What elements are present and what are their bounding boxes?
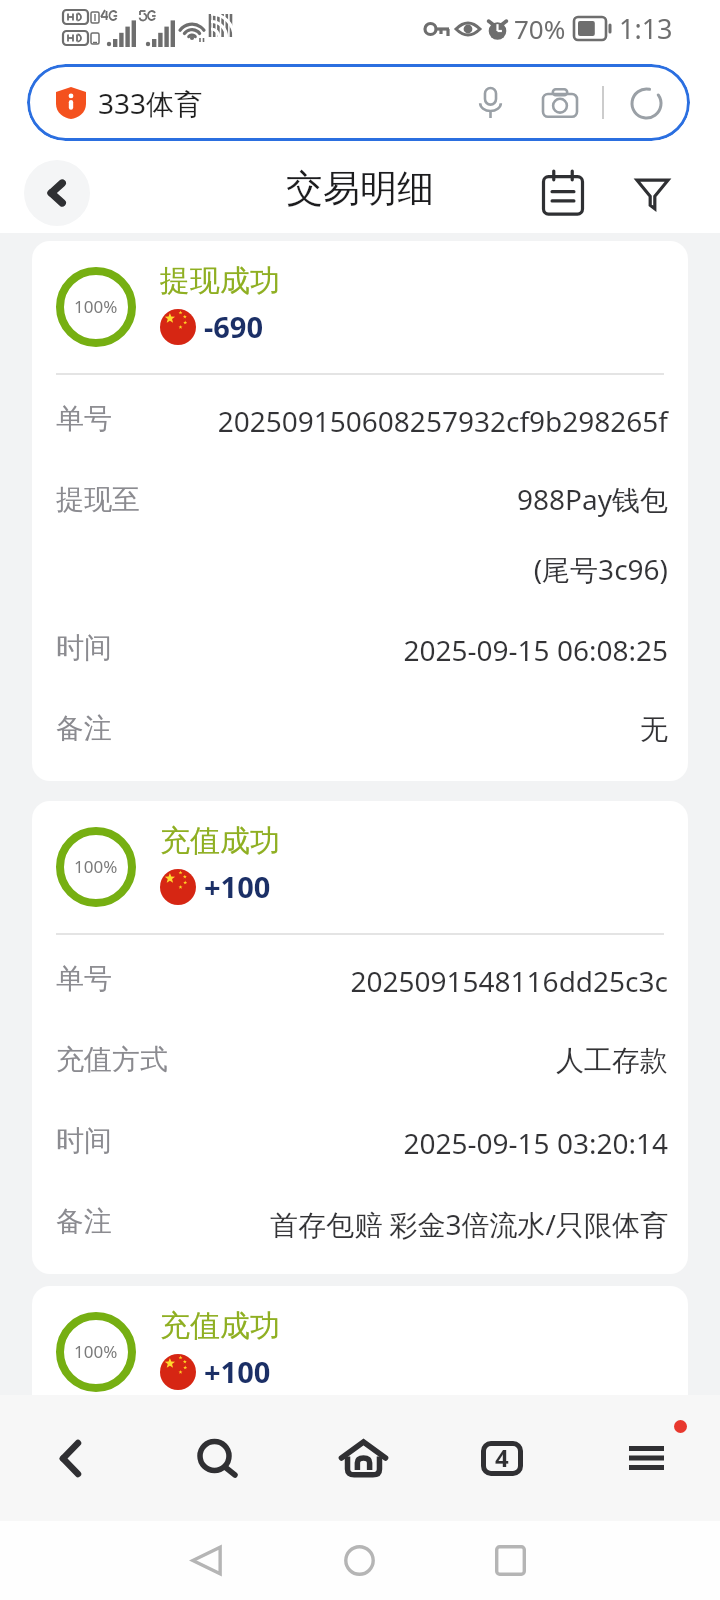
staticText: +100 bbox=[204, 1352, 271, 1391]
staticText: 单号 bbox=[56, 401, 112, 436]
button[interactable]: Filter bbox=[617, 158, 687, 228]
staticText: 充值成功 bbox=[160, 822, 280, 860]
staticText: 202509150608257932cf9b298265f bbox=[166, 402, 668, 440]
staticText: 100% bbox=[74, 855, 118, 878]
staticText: 2025-09-15 03:20:14 bbox=[166, 1124, 668, 1162]
staticText: 备注 bbox=[56, 711, 112, 746]
staticText: 100% bbox=[74, 295, 118, 318]
button[interactable]: Home bbox=[323, 1418, 403, 1498]
staticText: -690 bbox=[204, 307, 264, 346]
staticText: 4 bbox=[495, 1441, 509, 1474]
button[interactable]: Back bbox=[30, 1418, 110, 1498]
button[interactable]: Recents bbox=[470, 1521, 550, 1600]
staticText: 人工存款 bbox=[166, 1043, 668, 1078]
staticText: 首存包赔 彩金3倍流水/只限体育 bbox=[166, 1205, 668, 1243]
staticText: 100% bbox=[74, 1340, 118, 1363]
staticText: 988Pay钱包 (尾号3c96) bbox=[166, 480, 668, 588]
button[interactable]: Menu bbox=[606, 1418, 686, 1498]
button[interactable]: Records bbox=[528, 158, 598, 228]
staticText: 70% bbox=[514, 11, 566, 46]
button[interactable]: Camera search bbox=[534, 77, 586, 129]
button[interactable]: Voice search bbox=[464, 77, 516, 129]
button[interactable]: Refresh bbox=[620, 77, 672, 129]
staticText: 提现至 bbox=[56, 482, 140, 517]
staticText: 充值方式 bbox=[56, 1042, 168, 1077]
staticText: 备注 bbox=[56, 1204, 112, 1239]
staticText: 单号 bbox=[56, 961, 112, 996]
button[interactable]: Home bbox=[319, 1521, 399, 1600]
staticText: 333体育 bbox=[98, 84, 203, 122]
staticText: 充值成功 bbox=[160, 1307, 280, 1345]
staticText: 2025091548116dd25c3c bbox=[166, 962, 668, 1000]
button[interactable]: 100% bbox=[32, 801, 688, 1274]
staticText: 提现成功 bbox=[160, 262, 280, 300]
staticText: 交易明细 bbox=[286, 165, 434, 212]
staticText: 1:13 bbox=[619, 10, 673, 47]
staticText: 时间 bbox=[56, 630, 112, 665]
button[interactable]: 100% bbox=[32, 241, 688, 781]
staticText: 无 bbox=[166, 712, 668, 747]
button[interactable]: Tabs bbox=[462, 1418, 542, 1498]
button[interactable]: 333体育 bbox=[27, 64, 690, 141]
button[interactable]: Back bbox=[24, 160, 90, 226]
staticText: 2025-09-15 06:08:25 bbox=[166, 631, 668, 669]
staticText: 时间 bbox=[56, 1123, 112, 1158]
button[interactable]: Back bbox=[166, 1521, 246, 1600]
staticText: +100 bbox=[204, 867, 271, 906]
button[interactable]: Search bbox=[177, 1418, 257, 1498]
button[interactable]: 100% bbox=[32, 1286, 688, 1418]
